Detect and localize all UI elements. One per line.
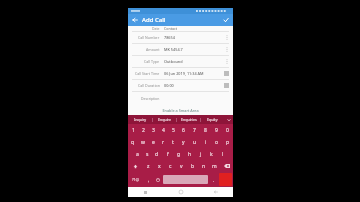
button[interactable]: v bbox=[176, 160, 187, 172]
staticText: Call Start Time bbox=[135, 71, 160, 76]
button[interactable]: h bbox=[184, 148, 195, 160]
button[interactable]: Space bbox=[163, 175, 208, 184]
button[interactable]: r bbox=[158, 136, 168, 148]
button[interactable]: b bbox=[187, 160, 198, 172]
button[interactable]: i bbox=[200, 136, 211, 148]
button[interactable]: Enable a Smart Area bbox=[128, 105, 233, 115]
button[interactable]: w bbox=[138, 136, 148, 148]
button[interactable]: o bbox=[211, 136, 222, 148]
button[interactable]: p bbox=[222, 136, 233, 148]
button[interactable]: g bbox=[173, 148, 184, 160]
button[interactable]: Call Duration bbox=[128, 80, 233, 92]
staticText: 0 bbox=[226, 127, 229, 134]
button[interactable]: y bbox=[178, 136, 189, 148]
staticText: Add Call bbox=[142, 16, 166, 24]
button[interactable]: 5 bbox=[168, 124, 178, 136]
button[interactable]: e bbox=[148, 136, 158, 148]
staticText: x bbox=[158, 163, 161, 170]
staticText: ?1☺ bbox=[132, 177, 140, 182]
staticText: a bbox=[136, 151, 139, 158]
staticText: Enquire bbox=[158, 117, 172, 122]
button[interactable]: 7 bbox=[189, 124, 200, 136]
button[interactable]: x bbox=[154, 160, 165, 172]
staticText: Outbound bbox=[164, 59, 225, 64]
button[interactable]: Call Start Time bbox=[128, 68, 233, 80]
staticText: r bbox=[162, 139, 165, 146]
staticText: d bbox=[155, 151, 159, 158]
button[interactable]: m bbox=[209, 160, 220, 172]
staticText: Call Number bbox=[138, 35, 160, 40]
button[interactable]: Amount bbox=[128, 44, 233, 56]
staticText: t bbox=[172, 139, 174, 146]
button[interactable]: Call Type bbox=[128, 56, 233, 68]
button[interactable]: c bbox=[165, 160, 176, 172]
staticText: f bbox=[167, 151, 169, 158]
button[interactable]: 6 bbox=[178, 124, 189, 136]
staticText: . bbox=[213, 177, 215, 183]
button[interactable]: Home bbox=[163, 187, 198, 197]
button[interactable]: d bbox=[152, 148, 162, 160]
staticText: 1 bbox=[132, 127, 135, 134]
button[interactable]: Back bbox=[128, 14, 142, 26]
staticText: w bbox=[141, 139, 145, 146]
button[interactable]: 3 bbox=[148, 124, 158, 136]
button[interactable]: Expand suggestions bbox=[224, 115, 233, 124]
button[interactable]: , bbox=[144, 172, 153, 187]
button[interactable]: t bbox=[168, 136, 178, 148]
staticText: Call Duration bbox=[138, 83, 160, 88]
button[interactable]: . bbox=[209, 172, 218, 187]
staticText: Inquiry bbox=[134, 117, 147, 122]
staticText: z bbox=[147, 163, 150, 170]
staticText: Amount bbox=[146, 47, 160, 52]
staticText: v bbox=[180, 163, 183, 170]
button[interactable]: 8 bbox=[200, 124, 211, 136]
button[interactable]: 0 bbox=[222, 124, 233, 136]
staticText: Call Type bbox=[144, 59, 160, 64]
staticText: k bbox=[210, 151, 213, 158]
staticText: Description bbox=[141, 96, 160, 101]
button[interactable]: Backspace bbox=[220, 160, 233, 172]
button[interactable]: Enquiries bbox=[177, 115, 200, 124]
button[interactable]: q bbox=[128, 136, 138, 148]
staticText: 8 bbox=[204, 127, 207, 134]
button[interactable]: Shift bbox=[128, 160, 142, 172]
button[interactable]: 1 bbox=[128, 124, 138, 136]
staticText: Contact bbox=[164, 26, 178, 31]
button[interactable]: n bbox=[198, 160, 209, 172]
button[interactable]: 2 bbox=[138, 124, 148, 136]
staticText: c bbox=[169, 163, 172, 170]
button[interactable]: Save bbox=[219, 14, 233, 26]
button[interactable]: ?1☺ bbox=[128, 172, 144, 187]
button[interactable]: f bbox=[162, 148, 173, 160]
staticText: q bbox=[131, 139, 135, 146]
button[interactable]: a bbox=[132, 148, 142, 160]
button[interactable]: Inquiry bbox=[128, 115, 152, 124]
button[interactable]: j bbox=[195, 148, 206, 160]
button[interactable]: z bbox=[142, 160, 154, 172]
button[interactable]: Back bbox=[198, 187, 233, 197]
staticText: j bbox=[200, 151, 202, 158]
button[interactable]: u bbox=[189, 136, 200, 148]
staticText: b bbox=[191, 163, 195, 170]
button[interactable]: Equity bbox=[201, 115, 224, 124]
staticText: Date bbox=[152, 26, 160, 31]
button[interactable]: Call Number bbox=[128, 32, 233, 44]
staticText: , bbox=[148, 177, 150, 183]
staticText: 9 bbox=[215, 127, 218, 134]
staticText: u bbox=[193, 139, 197, 146]
button[interactable]: s bbox=[142, 148, 152, 160]
button[interactable]: 9 bbox=[211, 124, 222, 136]
button[interactable]: Recent apps bbox=[128, 187, 163, 197]
button[interactable]: k bbox=[206, 148, 217, 160]
staticText: Enable a Smart Area bbox=[162, 108, 199, 113]
button[interactable]: Enquire bbox=[153, 115, 176, 124]
staticText: h bbox=[188, 151, 192, 158]
button[interactable]: Emoji bbox=[153, 172, 162, 187]
staticText: l bbox=[222, 151, 224, 158]
staticText: MK 5454.7 bbox=[164, 47, 225, 52]
button[interactable]: 4 bbox=[158, 124, 168, 136]
staticText: g bbox=[177, 151, 181, 158]
staticText: n bbox=[202, 163, 206, 170]
button[interactable]: l bbox=[217, 148, 228, 160]
